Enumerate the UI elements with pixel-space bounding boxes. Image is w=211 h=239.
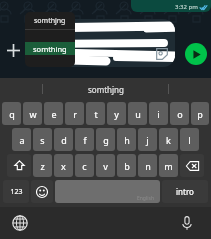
staticText: o [177,108,183,120]
staticText: i [157,108,160,120]
button[interactable]: b [117,154,136,177]
staticText: h [124,134,130,146]
button[interactable]: 3:32 pm [131,0,211,12]
staticText: q [9,108,15,120]
button[interactable]: Stickers [155,47,169,61]
staticText: m [164,160,173,172]
staticText: n [145,160,151,172]
staticText: a [19,134,25,146]
button[interactable]: c [75,154,94,177]
staticText: z [40,160,45,172]
button[interactable]: v [96,154,115,177]
button[interactable]: q [2,102,21,125]
staticText: w [29,108,37,120]
button[interactable]: d [54,128,73,151]
staticText: t [94,108,98,120]
button[interactable]: z [33,154,52,177]
button[interactable]: Voice input [179,215,195,231]
button[interactable]: o [170,102,189,125]
button[interactable]: g [96,128,115,151]
button[interactable]: Send [185,43,207,65]
button[interactable]: e [44,102,63,125]
button[interactable]: k [159,128,178,151]
button[interactable]: j [138,128,157,151]
button[interactable]: p [191,102,209,125]
button[interactable]: y [107,102,126,125]
staticText: intro [176,186,194,197]
button[interactable]: l [180,128,199,151]
staticText: j [146,134,149,146]
staticText: s [40,134,45,146]
button[interactable]: intro [162,180,208,203]
staticText: somthjng [34,16,66,26]
staticText: g [103,134,109,146]
staticText: b [124,160,130,172]
button[interactable]: h [117,128,136,151]
staticText: l [188,134,191,146]
staticText: r [73,108,77,120]
button[interactable]: Attach [5,42,22,59]
button[interactable]: Emoji [31,180,53,203]
staticText: somthing [33,44,67,54]
button[interactable]: somthing [25,42,75,55]
staticText: 3:32 pm [175,3,198,11]
button[interactable]: f [75,128,94,151]
staticText: u [135,108,141,120]
button[interactable]: Change keyboard language [12,215,28,231]
button[interactable]: x [54,154,73,177]
button[interactable]: t [86,102,105,125]
staticText: d [61,134,67,146]
staticText: English [137,195,155,202]
staticText: e [51,108,57,120]
staticText: 123 [10,187,23,197]
button[interactable]: u [128,102,147,125]
button[interactable]: m [159,154,178,177]
button[interactable]: somthjng [25,12,75,29]
button[interactable]: Stickers [26,19,175,67]
staticText: k [166,134,171,146]
staticText: somthjng [88,84,124,95]
button[interactable]: Space [55,180,160,203]
staticText: p [197,108,203,120]
staticText: v [103,160,108,172]
button[interactable]: i [149,102,168,125]
button[interactable]: n [138,154,157,177]
staticText: f [83,134,87,146]
button[interactable]: Shift [7,154,31,177]
button[interactable]: r [65,102,84,125]
button[interactable]: a [12,128,31,151]
button[interactable]: Backspace [180,154,204,177]
button[interactable]: 123 [3,180,29,203]
staticText: y [114,108,119,120]
staticText: c [82,160,87,172]
button[interactable]: w [23,102,42,125]
staticText: x [61,160,66,172]
button[interactable]: s [33,128,52,151]
